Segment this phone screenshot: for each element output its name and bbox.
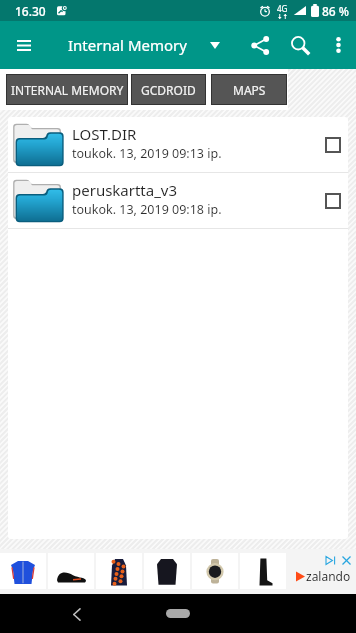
button[interactable] xyxy=(48,553,94,589)
button[interactable]: Open navigation drawer xyxy=(0,21,48,69)
staticText: 4G xyxy=(277,3,288,14)
button[interactable]: Internal Memory xyxy=(68,25,220,65)
staticText: peruskartta_v3 xyxy=(72,180,178,200)
staticText: LOST.DIR xyxy=(72,124,137,144)
staticText: 86 % xyxy=(322,3,350,19)
button[interactable]: GCDROID xyxy=(131,74,206,105)
staticText: toukok. 13, 2019 09:18 ip. xyxy=(72,201,222,218)
staticText: 16.30 xyxy=(15,3,46,19)
staticText: zalando xyxy=(306,568,351,584)
button[interactable]: More options xyxy=(320,21,356,69)
button[interactable]: peruskartta_v3 xyxy=(8,173,348,228)
staticText: GCDROID xyxy=(141,82,196,98)
button[interactable]: Select item xyxy=(324,186,342,216)
button[interactable]: Home xyxy=(166,609,190,618)
button[interactable]: Select item xyxy=(324,130,342,160)
button[interactable] xyxy=(240,553,286,589)
button[interactable] xyxy=(144,553,190,589)
button[interactable]: Search xyxy=(280,21,320,69)
staticText: Internal Memory xyxy=(68,35,187,55)
staticText: INTERNAL MEMORY xyxy=(11,82,124,98)
staticText: MAPS xyxy=(233,82,266,98)
button[interactable] xyxy=(0,553,46,589)
button[interactable] xyxy=(96,553,142,589)
button[interactable]: zalando xyxy=(0,549,356,594)
button[interactable]: LOST.DIR xyxy=(8,117,348,172)
button[interactable] xyxy=(192,553,238,589)
staticText: toukok. 13, 2019 09:13 ip. xyxy=(72,145,222,162)
button[interactable]: MAPS xyxy=(211,74,287,105)
button[interactable]: INTERNAL MEMORY xyxy=(6,74,128,105)
button[interactable]: Back xyxy=(64,602,88,626)
button[interactable]: Share xyxy=(240,21,280,69)
